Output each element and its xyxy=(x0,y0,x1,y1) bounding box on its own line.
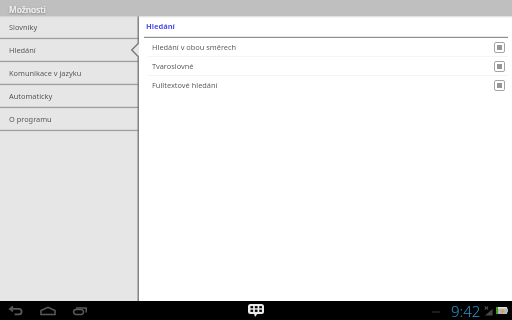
button[interactable]: Tvaroslovné xyxy=(139,57,512,75)
button[interactable]: Recent apps xyxy=(64,301,97,320)
button[interactable]: Komunikace v jazyku xyxy=(0,62,139,85)
button[interactable]: Fulltextové hledání xyxy=(139,76,512,94)
staticText: Hledání xyxy=(9,45,36,55)
staticText: Hledání xyxy=(146,21,175,31)
button[interactable]: Back xyxy=(0,301,31,320)
staticText: Automaticky xyxy=(9,91,53,101)
button[interactable]: Hledání xyxy=(0,39,139,62)
button[interactable]: Switch keyboard xyxy=(245,301,267,320)
staticText: Fulltextové hledání xyxy=(152,80,494,90)
button[interactable]: Hledání v obou směrech xyxy=(139,38,512,56)
staticText: Možnosti xyxy=(9,4,46,15)
staticText: Hledání v obou směrech xyxy=(152,42,494,52)
staticText: Tvaroslovné xyxy=(152,61,494,71)
staticText: O programu xyxy=(9,114,52,124)
button[interactable]: Home xyxy=(31,301,64,320)
staticText: 9:42 xyxy=(451,301,481,320)
staticText: Slovníky xyxy=(9,22,38,32)
staticText: Komunikace v jazyku xyxy=(9,68,82,78)
button[interactable]: Automaticky xyxy=(0,85,139,108)
button[interactable]: O programu xyxy=(0,108,139,131)
button[interactable]: Slovníky xyxy=(0,16,139,39)
